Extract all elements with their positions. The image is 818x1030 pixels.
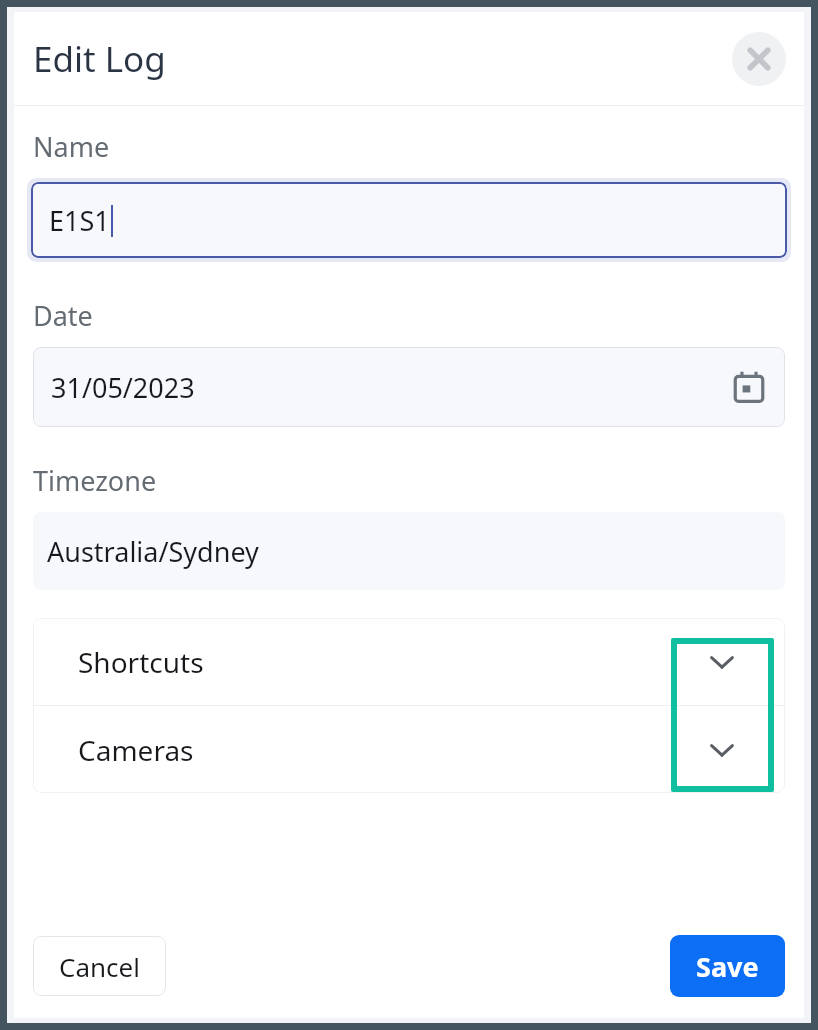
staticText: Australia/Sydney xyxy=(47,533,259,570)
button[interactable]: Pick date xyxy=(729,367,769,407)
staticText: Save xyxy=(696,948,759,985)
staticText: 31/05/2023 xyxy=(51,369,195,406)
button[interactable]: Cameras xyxy=(33,706,785,793)
staticText: Date xyxy=(33,297,93,334)
staticText: Name xyxy=(33,128,110,165)
button[interactable]: Australia/Sydney xyxy=(33,512,785,590)
button[interactable]: 31/05/2023 xyxy=(33,347,785,427)
button[interactable]: Save xyxy=(670,935,785,997)
button[interactable]: E1S1 xyxy=(31,182,787,258)
staticText: Cancel xyxy=(59,949,140,984)
button[interactable]: Close xyxy=(732,32,786,86)
button[interactable]: Shortcuts xyxy=(33,618,785,705)
staticText: Timezone xyxy=(33,462,157,499)
staticText: Edit Log xyxy=(33,35,166,83)
staticText: Shortcuts xyxy=(78,643,204,681)
staticText: E1S1 xyxy=(49,202,110,239)
button[interactable]: Cancel xyxy=(33,936,166,996)
staticText: Cameras xyxy=(78,731,194,769)
